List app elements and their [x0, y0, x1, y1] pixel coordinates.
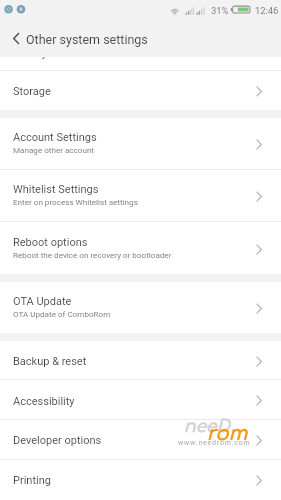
button[interactable]: Reboot options: [0, 222, 281, 274]
staticText: www.needrom.com: [178, 439, 251, 447]
staticText: Whitelist Settings: [13, 183, 99, 196]
staticText: Accessibility: [13, 395, 75, 408]
button[interactable]: Developer options: [0, 420, 281, 459]
button[interactable]: Navigate up: [0, 22, 31, 57]
staticText: Reboot the device on recovery or bootloa…: [13, 250, 172, 259]
staticText: Developer options: [13, 434, 102, 447]
button[interactable]: Printing: [0, 460, 281, 499]
staticText: 12:46: [255, 5, 279, 16]
staticText: Account Settings: [13, 131, 97, 144]
button[interactable]: Account Settings: [0, 118, 281, 169]
staticText: Manage other account: [13, 145, 95, 154]
staticText: OTA Update of ComboRom: [13, 309, 111, 318]
button[interactable]: Storage: [0, 71, 281, 110]
button[interactable]: Backup & reset: [0, 341, 281, 379]
button[interactable]: Whitelist Settings: [0, 170, 281, 221]
staticText: Reboot options: [13, 236, 88, 249]
staticText: Battery: [12, 57, 47, 60]
button[interactable]: OTA Update: [0, 282, 281, 333]
staticText: Enter on process Whitelist settings: [13, 197, 138, 206]
staticText: Storage: [13, 85, 51, 98]
staticText: Backup & reset: [13, 355, 87, 368]
staticText: Other system settings: [26, 32, 148, 47]
staticText: neeD: [184, 417, 230, 436]
staticText: 31%: [211, 5, 229, 16]
staticText: rom: [207, 423, 248, 445]
button[interactable]: Accessibility: [0, 380, 281, 419]
staticText: OTA Update: [13, 295, 72, 308]
staticText: Printing: [13, 474, 51, 487]
